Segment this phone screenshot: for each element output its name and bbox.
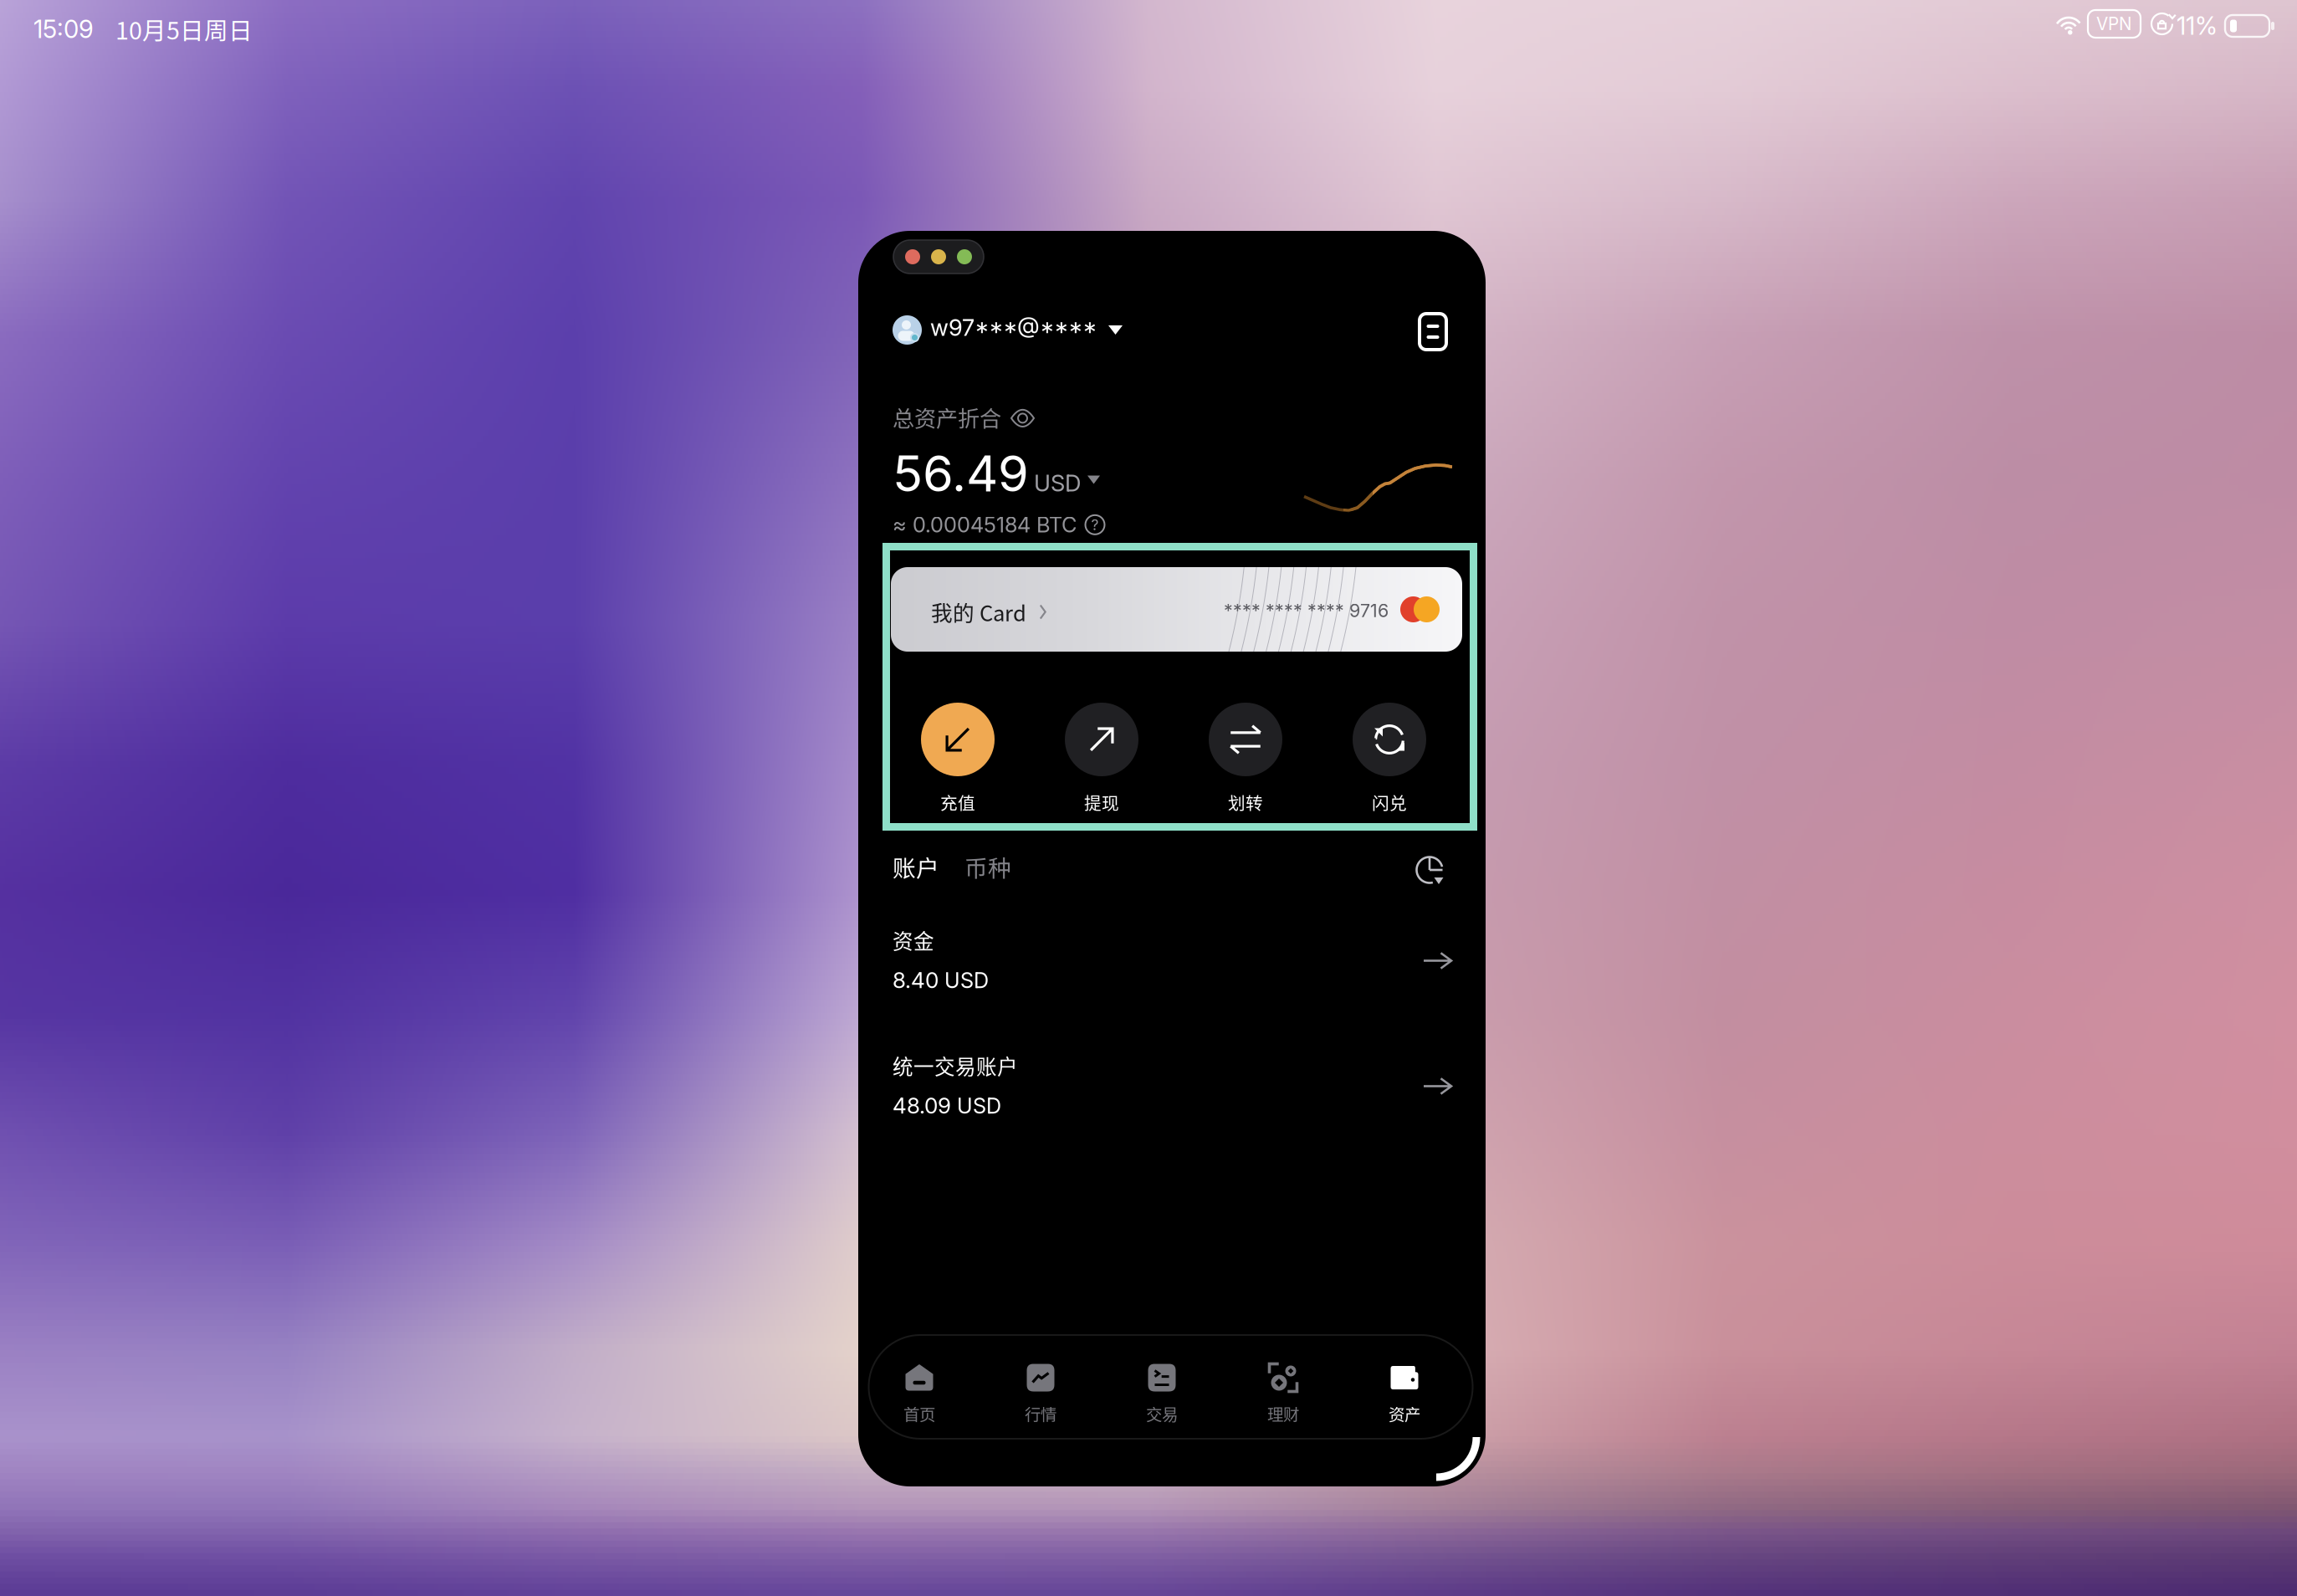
staticText: 48.09 <box>893 1092 951 1119</box>
staticText: 总资产折合 <box>893 402 1001 433</box>
staticText: 10月5日周日 <box>115 12 253 46</box>
staticText: 8.40 <box>893 967 939 993</box>
staticText: 币种 <box>964 850 1011 883</box>
button[interactable]: 我的 Card <box>891 567 1462 652</box>
staticText: 行情 <box>1025 1402 1056 1426</box>
button[interactable]: 资产 <box>1344 1363 1465 1423</box>
staticText: 充值 <box>940 790 975 815</box>
staticText: VPN <box>2096 13 2132 34</box>
button[interactable]: 划转 <box>1187 703 1304 809</box>
button[interactable]: 资金 <box>893 925 1451 990</box>
button[interactable]: Distribution <box>1413 853 1446 887</box>
staticText: ≈ 0.00045184 BTC <box>893 512 1077 538</box>
button[interactable]: 闪兑 <box>1331 703 1448 809</box>
button[interactable]: 提现 <box>1043 703 1160 809</box>
staticText: 11% <box>2177 11 2218 41</box>
staticText: 我的 Card <box>931 596 1026 627</box>
staticText: USD <box>957 1093 1001 1119</box>
staticText: 56.49 <box>893 443 1029 503</box>
staticText: 资金 <box>893 925 934 955</box>
staticText: 统一交易账户 <box>893 1051 1018 1080</box>
button[interactable]: 充值 <box>899 703 1016 809</box>
staticText: w97***@**** <box>930 314 1097 341</box>
staticText: 闪兑 <box>1372 790 1407 815</box>
button[interactable]: 统一交易账户 <box>893 1051 1451 1116</box>
button[interactable]: 理财 <box>1223 1363 1344 1423</box>
button[interactable]: Help <box>1084 514 1106 536</box>
button[interactable]: 币种 <box>939 850 1011 883</box>
staticText: 交易 <box>1146 1402 1178 1426</box>
staticText: ? <box>1091 516 1099 534</box>
button[interactable]: 首页 <box>859 1363 980 1423</box>
staticText: 账户 <box>893 850 939 883</box>
button[interactable]: 交易 <box>1101 1363 1223 1423</box>
button[interactable]: 总资产折合 <box>893 402 1034 433</box>
button[interactable]: Records <box>1418 312 1448 351</box>
staticText: 提现 <box>1084 790 1119 815</box>
staticText: USD <box>1034 469 1081 497</box>
button[interactable]: 账户 <box>893 850 939 883</box>
staticText: **** **** **** 9716 <box>1224 600 1389 622</box>
staticText: 理财 <box>1267 1402 1299 1426</box>
staticText: 资产 <box>1389 1402 1420 1426</box>
button[interactable]: 行情 <box>980 1363 1101 1423</box>
button[interactable]: w97***@**** <box>893 315 1123 345</box>
staticText: USD <box>944 968 989 993</box>
staticText: 15:09 <box>33 14 94 44</box>
button[interactable]: USD <box>1034 469 1100 497</box>
staticText: 划转 <box>1228 790 1263 815</box>
staticText: 首页 <box>903 1402 935 1426</box>
